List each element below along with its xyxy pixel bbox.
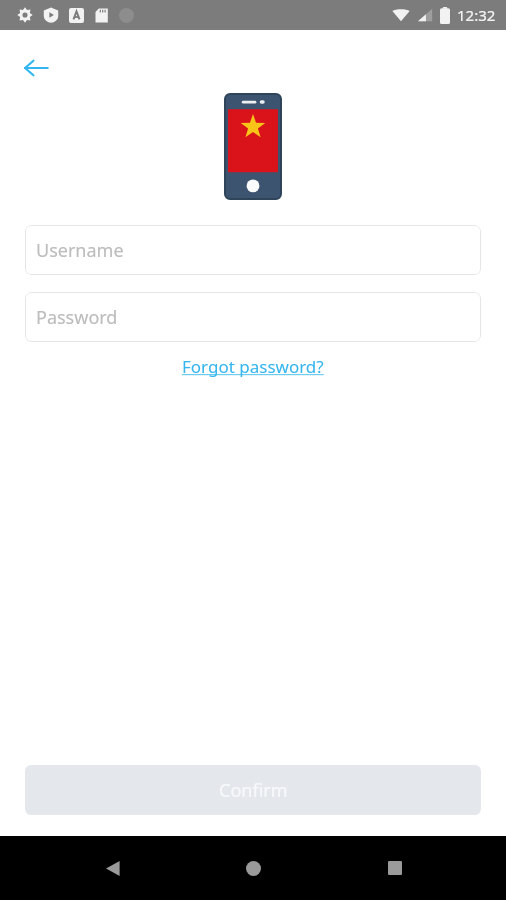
button[interactable]: Recent apps [365, 838, 425, 898]
staticText: Confirm [219, 778, 288, 803]
staticText: Password [36, 305, 118, 330]
staticText: 12:32 [457, 5, 496, 25]
button[interactable]: Password [25, 292, 481, 342]
button[interactable]: Home [223, 838, 283, 898]
button[interactable]: Username [25, 225, 481, 275]
button[interactable]: Back [12, 44, 60, 92]
button[interactable]: Back [82, 838, 142, 898]
staticText: Forgot password? [182, 355, 324, 378]
button[interactable]: Forgot password? [176, 351, 330, 382]
staticText: Username [36, 238, 124, 263]
